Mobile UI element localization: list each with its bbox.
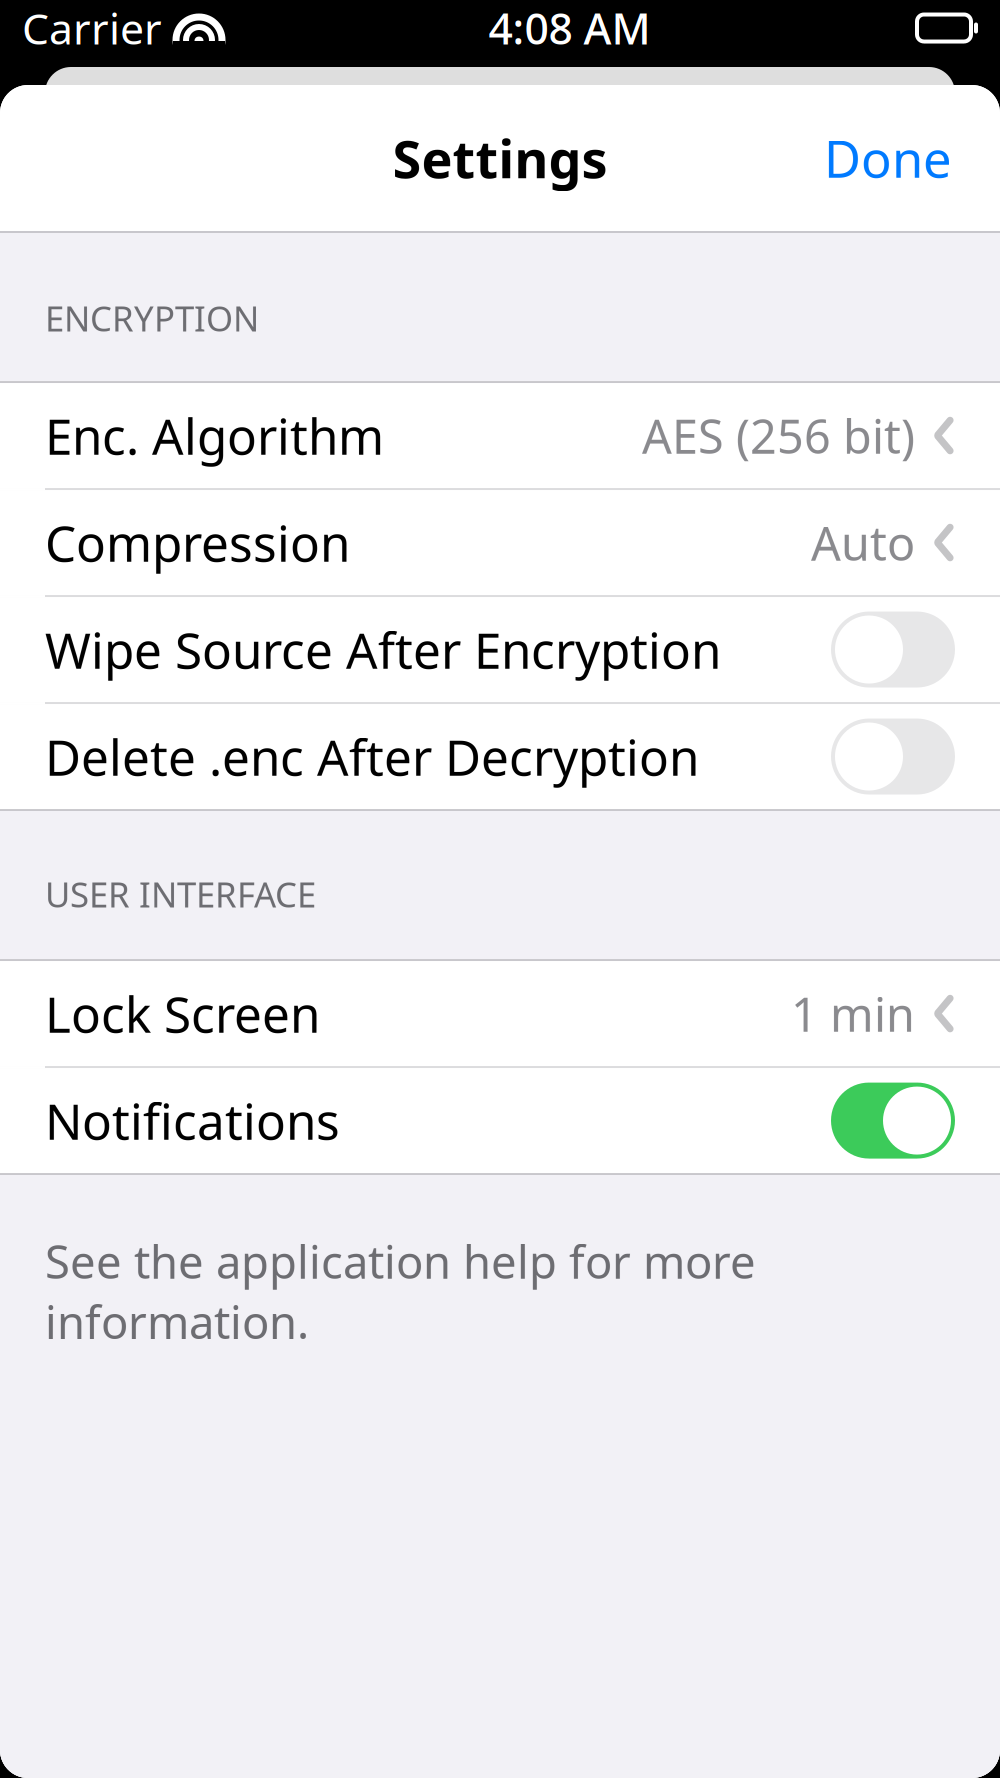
staticText: See the application help for more inform…	[45, 1231, 756, 1351]
button[interactable]: Wipe Source After Encryption	[0, 597, 1000, 702]
staticText: AES (256 bit)	[642, 405, 915, 467]
button[interactable]: Delete .enc After Decryption	[0, 704, 1000, 809]
staticText: Compression	[45, 510, 350, 575]
staticText: Carrier	[22, 0, 162, 56]
button[interactable]: Lock Screen	[0, 961, 1000, 1066]
staticText: Delete .enc After Decryption	[45, 724, 699, 789]
button[interactable]: Enc. Algorithm	[0, 383, 1000, 488]
button[interactable]: Notifications	[0, 1068, 1000, 1173]
staticText: Wipe Source After Encryption	[45, 617, 721, 682]
staticText: Notifications	[45, 1088, 340, 1153]
button[interactable]: Done	[802, 106, 974, 210]
staticText: Settings	[392, 123, 607, 193]
staticText: USER INTERFACE	[45, 871, 316, 917]
button[interactable]: Compression	[0, 490, 1000, 595]
staticText: Done	[824, 124, 952, 192]
staticText: ENCRYPTION	[45, 295, 259, 341]
staticText: 1 min	[791, 983, 915, 1045]
staticText: Enc. Algorithm	[45, 403, 384, 468]
staticText: Lock Screen	[45, 981, 320, 1046]
staticText: 4:08 AM	[488, 0, 650, 56]
staticText: Auto	[811, 512, 915, 574]
